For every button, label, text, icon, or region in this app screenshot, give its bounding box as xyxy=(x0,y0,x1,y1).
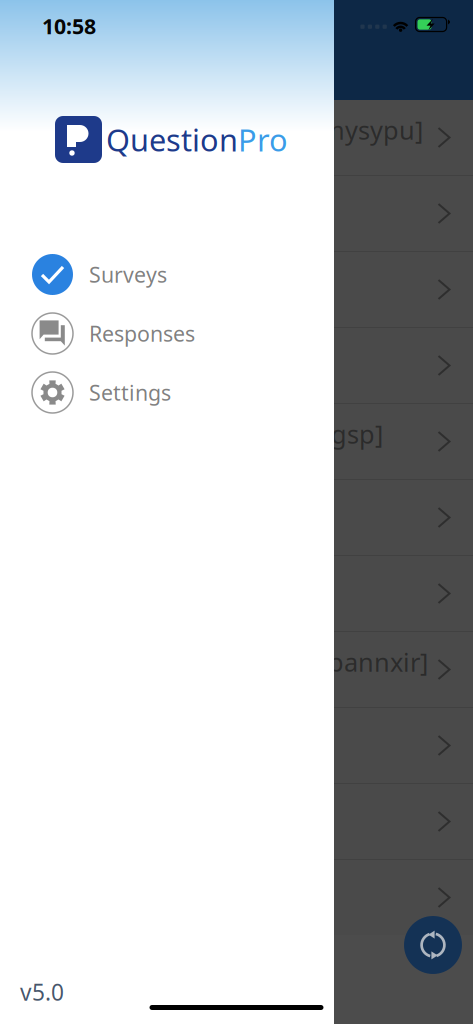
staticText: Product survey [trpannxir] xyxy=(116,645,428,679)
button[interactable]: Surveys xyxy=(0,245,334,304)
staticText: Settings xyxy=(89,378,171,407)
staticText: 10:58 xyxy=(42,12,96,40)
button[interactable]: Settings xyxy=(0,363,334,422)
staticText: Feedback survey [xkvgsp] xyxy=(78,417,383,451)
staticText: Surveys xyxy=(89,260,167,289)
staticText: Question xyxy=(106,119,238,160)
staticText: v5.0 xyxy=(20,977,64,1007)
staticText: Pro xyxy=(238,119,288,160)
button[interactable]: Responses xyxy=(0,304,334,363)
button[interactable]: Refresh xyxy=(404,916,462,974)
staticText: Responses xyxy=(89,319,195,348)
staticText: Survey [qwvelnmysypu] xyxy=(140,113,423,147)
